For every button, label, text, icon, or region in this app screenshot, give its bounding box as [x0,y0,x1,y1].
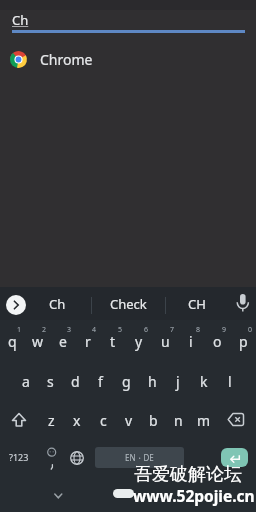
staticText: Ch [12,11,29,29]
button[interactable] [221,448,248,467]
button[interactable] [6,295,26,315]
staticText: j [176,372,180,391]
button[interactable]: CH [167,287,227,320]
staticText: EN・DE [125,452,154,463]
staticText: 吾爱破解论坛 [134,463,242,486]
staticText: 7 [170,325,175,335]
staticText: n [174,411,183,430]
staticText: f [98,372,103,391]
button[interactable]: h [139,361,165,402]
staticText: c [100,411,107,430]
staticText: g [122,372,131,391]
staticText: y [135,332,143,351]
staticText: z [48,411,55,430]
button[interactable]: o [204,322,230,360]
button[interactable]: l [217,361,243,402]
staticText: 8 [196,325,201,335]
staticText: e [59,332,67,351]
staticText: p [239,332,248,351]
button[interactable] [42,438,62,470]
staticText: 1 [17,325,22,335]
staticText: CH [188,295,206,313]
button[interactable]: k [191,361,217,402]
staticText: q [8,332,17,351]
button[interactable] [216,402,256,438]
button[interactable]: x [64,402,90,438]
button[interactable]: p [230,322,256,360]
button[interactable]: g [113,361,139,402]
button[interactable] [0,402,38,438]
button[interactable]: e [50,322,75,360]
staticText: l [228,372,232,391]
button[interactable]: t [100,322,126,360]
button[interactable] [64,445,89,470]
staticText: 4 [92,325,97,335]
staticText: 3 [67,325,72,335]
button[interactable]: b [141,402,166,438]
button[interactable]: j [165,361,191,402]
staticText: b [149,411,158,430]
staticText: w [32,332,44,351]
staticText: x [73,411,81,430]
button[interactable]: i [178,322,204,360]
staticText: r [85,332,91,351]
staticText: 0 [248,325,253,335]
staticText: 2 [42,325,47,335]
button[interactable]: n [166,402,191,438]
button[interactable]: v [116,402,141,438]
button[interactable]: q [0,322,25,360]
staticText: 9 [222,325,227,335]
button[interactable]: m [191,402,216,438]
staticText: www.52pojie.cn [133,485,255,506]
staticText: 5 [118,325,123,335]
staticText: u [161,332,170,351]
button[interactable]: f [88,361,113,402]
staticText: m [197,411,211,430]
staticText: Chrome [40,50,93,69]
staticText: o [213,332,222,351]
button[interactable]: s [38,361,63,402]
button[interactable]: u [152,322,178,360]
staticText: ?123 [9,451,29,463]
button[interactable]: r [75,322,100,360]
button[interactable]: Check [96,287,160,320]
staticText: v [125,411,133,430]
button[interactable]: Chrome [0,46,256,72]
staticText: k [200,372,208,391]
staticText: t [110,332,116,351]
button[interactable] [230,291,255,316]
staticText: h [148,372,157,391]
staticText: a [22,372,30,391]
button[interactable]: z [38,402,64,438]
button[interactable]: ?123 [4,444,34,470]
button[interactable]: Ch [39,287,75,320]
staticText: Ch [49,295,66,313]
button[interactable]: c [90,402,116,438]
staticText: d [71,372,80,391]
button[interactable]: w [25,322,50,360]
button[interactable]: a [13,361,38,402]
staticText: 6 [144,325,149,335]
button[interactable]: y [126,322,152,360]
staticText: i [189,332,193,351]
button[interactable]: d [63,361,88,402]
button[interactable]: EN・DE [95,447,184,468]
staticText: s [47,372,54,391]
staticText: Check [110,295,147,313]
